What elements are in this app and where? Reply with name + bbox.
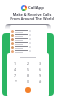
staticText: 0	[27, 79, 30, 84]
staticText: 1	[14, 61, 17, 66]
staticText: 5	[27, 67, 30, 72]
staticText: 7	[14, 73, 17, 78]
staticText: 9	[39, 73, 42, 78]
staticText: 8	[27, 73, 30, 78]
staticText: 3	[39, 61, 42, 66]
staticText: 2	[27, 61, 30, 66]
staticText: Make & Receive Calls From Around The Wor…	[0, 12, 64, 21]
staticText: CallApp	[28, 5, 44, 11]
staticText: 6	[39, 67, 42, 72]
staticText: *	[15, 79, 17, 84]
staticText: 4	[14, 67, 17, 72]
staticText: #	[39, 79, 42, 84]
